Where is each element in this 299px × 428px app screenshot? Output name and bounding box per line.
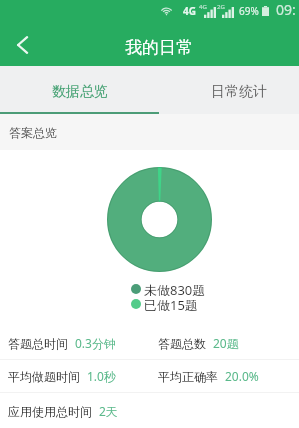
staticText: 应用使用总时间: [8, 404, 92, 419]
staticText: 答题总数: [158, 336, 206, 351]
staticText: 数据总览: [52, 83, 108, 101]
staticText: 1.0秒: [87, 368, 116, 384]
staticText: 未做830题: [144, 281, 206, 296]
staticText: 69%: [239, 4, 259, 18]
staticText: 20题: [213, 335, 239, 351]
staticText: 答案总览: [9, 125, 57, 140]
staticText: 日常统计: [211, 83, 267, 101]
staticText: 平均正确率: [158, 369, 218, 384]
staticText: 答题总时间: [8, 336, 68, 351]
staticText: 09:5: [276, 0, 299, 21]
staticText: 平均做题时间: [8, 369, 80, 384]
staticText: 2天: [99, 403, 118, 419]
staticText: 0.3分钟: [75, 335, 116, 351]
staticText: 我的日常: [125, 37, 193, 58]
staticText: 已做15题: [144, 296, 198, 311]
button[interactable]: 数据总览: [0, 66, 159, 114]
staticText: 20.0%: [225, 368, 259, 384]
staticText: 4G: [199, 3, 207, 11]
staticText: 2G: [217, 3, 225, 11]
staticText: 4G: [183, 4, 196, 18]
button[interactable]: 日常统计: [159, 66, 299, 114]
button[interactable]: Back: [0, 21, 44, 66]
